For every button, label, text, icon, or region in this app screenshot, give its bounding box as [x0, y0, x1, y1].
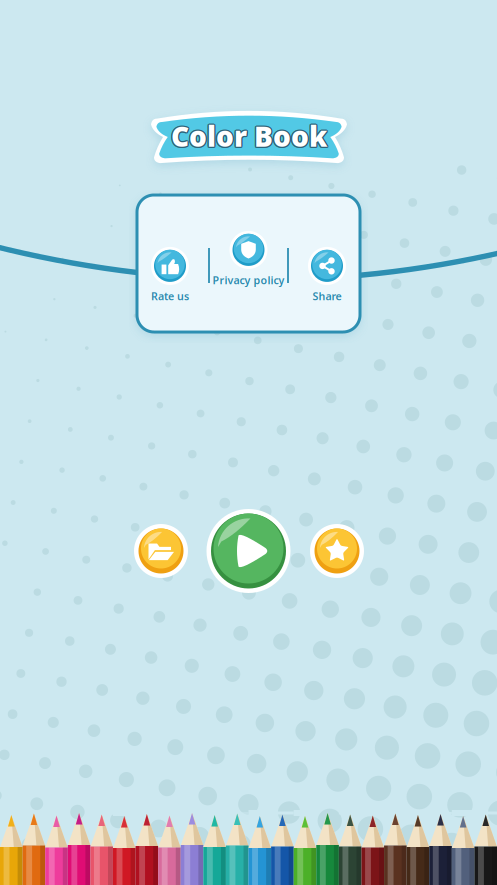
staticText: Share [312, 289, 341, 303]
button[interactable]: Play [206, 509, 290, 593]
button[interactable]: Rate us [151, 247, 189, 303]
staticText: Color Book [171, 116, 327, 153]
button[interactable]: Share [308, 247, 346, 303]
staticText: Privacy policy [212, 273, 284, 287]
staticText: Color Book [172, 116, 328, 154]
button[interactable]: Open gallery [134, 524, 188, 578]
staticText: Color Book [172, 117, 328, 155]
staticText: Color Book [171, 117, 327, 155]
staticText: Color Book [170, 116, 326, 154]
staticText: Color Book [171, 119, 327, 156]
staticText: Rate us [151, 289, 189, 303]
button[interactable]: Privacy policy [212, 231, 284, 287]
staticText: Color Book [170, 117, 326, 155]
button[interactable]: Favourites [310, 524, 364, 578]
staticText: Color Book [172, 118, 328, 155]
staticText: Color Book [170, 118, 326, 155]
